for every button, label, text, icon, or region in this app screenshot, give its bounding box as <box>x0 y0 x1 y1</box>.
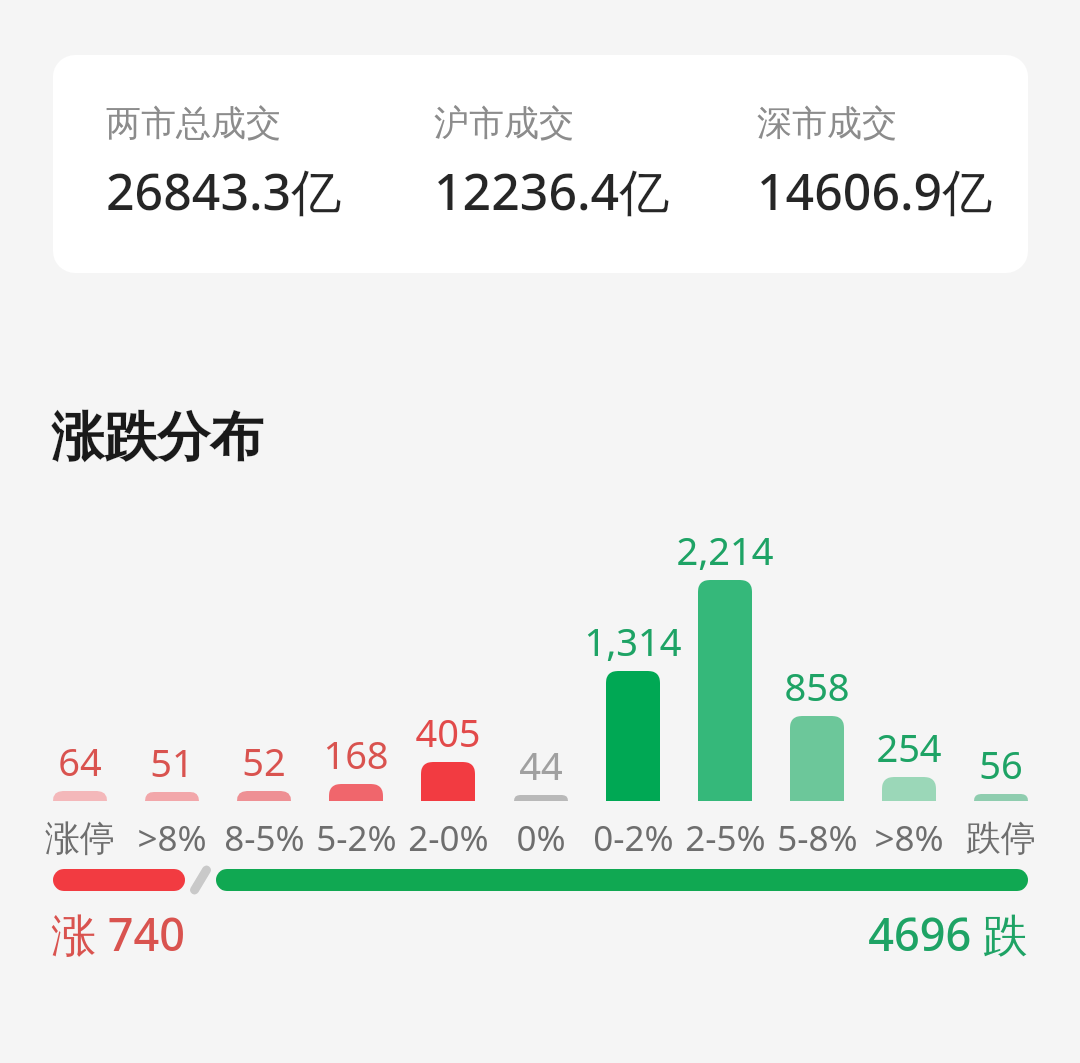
staticText: >8% <box>874 814 944 862</box>
button[interactable]: 涨停 64 <box>53 791 107 801</box>
staticText: 26843.3亿 <box>106 157 342 225</box>
button[interactable]: 两市总成交 <box>106 101 342 225</box>
button[interactable]: 涨跌比例 <box>53 869 1028 891</box>
staticText: 51 <box>150 736 194 788</box>
button[interactable]: 涨 740 <box>51 903 185 964</box>
staticText: 1,314 <box>584 615 682 667</box>
staticText: 涨跌分布 <box>51 404 263 471</box>
staticText: 涨停 <box>45 816 115 860</box>
staticText: 858 <box>784 660 850 712</box>
staticText: 168 <box>323 728 389 780</box>
staticText: 0-2% <box>593 814 674 862</box>
staticText: 涨 740 <box>51 903 185 964</box>
button[interactable]: 2-5% 2,214 <box>698 580 752 801</box>
staticText: 12236.4亿 <box>434 157 670 225</box>
staticText: 52 <box>242 735 286 787</box>
staticText: >8% <box>137 814 207 862</box>
button[interactable]: 8-5% 52 <box>237 791 291 801</box>
staticText: 5-8% <box>777 814 858 862</box>
staticText: 8-5% <box>224 814 305 862</box>
staticText: 2-5% <box>685 814 766 862</box>
button[interactable]: 跌停 56 <box>974 794 1028 801</box>
staticText: 64 <box>58 735 102 787</box>
staticText: 254 <box>876 721 942 773</box>
staticText: 0% <box>516 814 566 862</box>
button[interactable]: 5-8% 858 <box>790 716 844 801</box>
staticText: 4696 跌 <box>868 903 1028 964</box>
button[interactable]: 5-2% 168 <box>329 784 383 801</box>
button[interactable]: 沪市成交 <box>434 101 670 225</box>
button[interactable]: 0-2% 1,314 <box>606 671 660 801</box>
button[interactable]: >8% 254 <box>882 777 936 801</box>
staticText: 5-2% <box>316 814 397 862</box>
staticText: 深市成交 <box>757 101 897 145</box>
button[interactable]: 4696 跌 <box>628 903 1028 964</box>
staticText: 56 <box>979 738 1023 790</box>
button[interactable]: 两市总成交 <box>53 55 1028 273</box>
button[interactable]: >8% 51 <box>145 792 199 801</box>
staticText: 2,214 <box>676 524 774 576</box>
button[interactable]: 2-0% 405 <box>421 762 475 801</box>
button[interactable]: 0% 44 <box>514 795 568 801</box>
staticText: 2-0% <box>408 814 489 862</box>
staticText: 沪市成交 <box>434 101 574 145</box>
staticText: 两市总成交 <box>106 101 281 145</box>
staticText: 14606.9亿 <box>757 157 993 225</box>
staticText: 44 <box>519 739 563 791</box>
button[interactable]: 深市成交 <box>757 101 993 225</box>
staticText: 405 <box>415 706 481 758</box>
staticText: 跌停 <box>966 816 1036 860</box>
